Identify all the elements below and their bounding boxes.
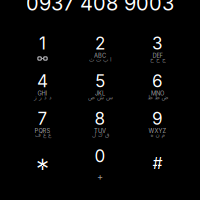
staticText: # [152,154,162,173]
staticText: 9 [152,108,163,129]
staticText: 3 [152,33,163,54]
button[interactable]: pound [129,146,186,183]
staticText: ق ك ل [91,131,108,138]
button[interactable]: 9 WXYZ [129,108,186,146]
staticText: 0937 408 9003 [26,0,174,15]
staticText: 5 [95,71,105,91]
button[interactable]: 0 plus [71,146,129,183]
staticText: TUV [94,127,106,134]
staticText: س ش ص [87,94,112,100]
staticText: + [97,171,103,182]
staticText: ع غ ف [34,131,50,138]
button[interactable]: 4 GHI [14,71,71,108]
staticText: ج ح خ [149,56,165,63]
staticText: WXYZ [148,127,166,134]
staticText: 7 [37,108,47,129]
staticText: ض ط ظ [147,94,168,100]
staticText: GHI [37,90,47,97]
staticText: DEF [152,52,162,59]
staticText: PQRS [34,127,50,134]
staticText: MNO [151,90,164,97]
staticText: ا ب ت ث [88,56,111,63]
button[interactable]: 7 PQRS [14,108,71,146]
staticText: 2 [95,33,105,54]
button[interactable]: 6 MNO [129,71,186,108]
button[interactable]: 8 TUV [71,108,129,146]
staticText: 6 [152,71,163,91]
staticText: ∗ [35,153,50,174]
staticText: م ن ه [150,131,165,138]
staticText: ABC [94,52,106,59]
staticText: 4 [37,71,48,91]
button[interactable]: 2 ABC [71,33,129,71]
staticText: 0 [94,146,105,166]
button[interactable]: star [14,146,71,183]
staticText: JKL [95,90,105,97]
staticText: 1 [39,33,46,54]
staticText: 8 [94,108,105,129]
staticText: د ذ ر ز [33,94,51,100]
button[interactable]: 5 JKL [71,71,129,108]
button[interactable]: 3 DEF [129,33,186,71]
button[interactable]: 1 voicemail [14,33,71,71]
